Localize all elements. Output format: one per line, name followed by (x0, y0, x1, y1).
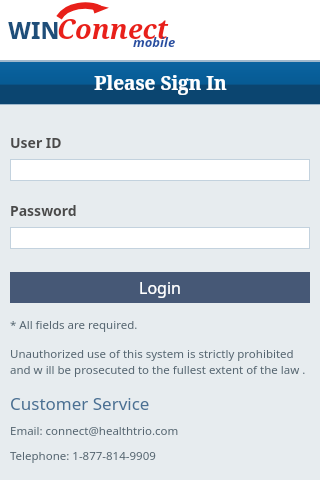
staticText: Connect (57, 10, 168, 47)
staticText: WIN (8, 14, 60, 45)
button[interactable]: User ID input (10, 159, 310, 181)
button[interactable]: Password input (10, 227, 310, 249)
button[interactable]: Telephone: 1-877-814-9909 (10, 448, 156, 464)
staticText: Please Sign In (94, 70, 227, 96)
button[interactable]: Customer Service (10, 392, 150, 415)
staticText: mobile (133, 33, 176, 51)
button[interactable]: Email: connect@healthtrio.com (10, 423, 179, 439)
staticText: Unauthorized use of this system is stric… (10, 346, 310, 377)
button[interactable]: Login (10, 272, 310, 303)
staticText: Login (139, 277, 181, 299)
staticText: * All fields are required. (10, 317, 138, 333)
staticText: Password (10, 201, 77, 220)
staticText: User ID (10, 133, 62, 152)
